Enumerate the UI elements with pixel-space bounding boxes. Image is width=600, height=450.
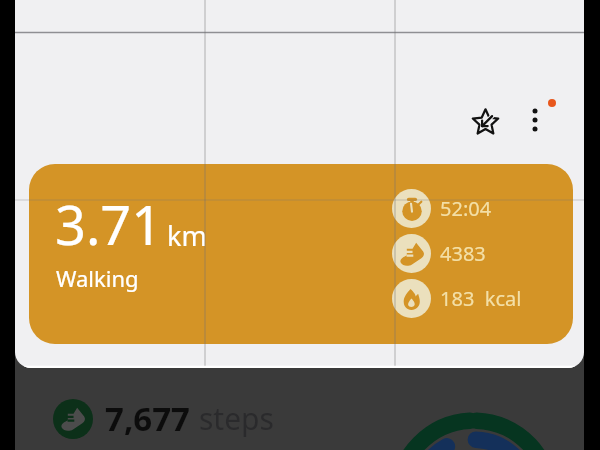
staticText: 7,677: [105, 396, 199, 441]
staticText: Walking: [56, 263, 139, 293]
staticText: 52:04: [440, 195, 492, 222]
staticText: 183 kcal: [440, 285, 522, 312]
button[interactable]: 3.71: [29, 164, 573, 344]
staticText: steps: [199, 398, 274, 439]
button[interactable]: More options: [505, 90, 565, 150]
staticText: 3.71: [55, 187, 163, 261]
button[interactable]: Add shortcut: [455, 91, 515, 151]
staticText: 4383: [440, 240, 486, 267]
staticText: km: [167, 217, 207, 254]
